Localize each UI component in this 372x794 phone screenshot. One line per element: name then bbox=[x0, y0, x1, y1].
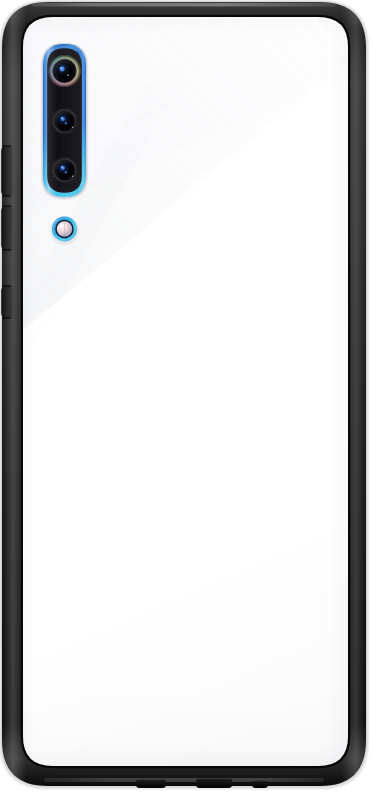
button[interactable]: White glass phone back in a black bumper… bbox=[0, 0, 372, 794]
